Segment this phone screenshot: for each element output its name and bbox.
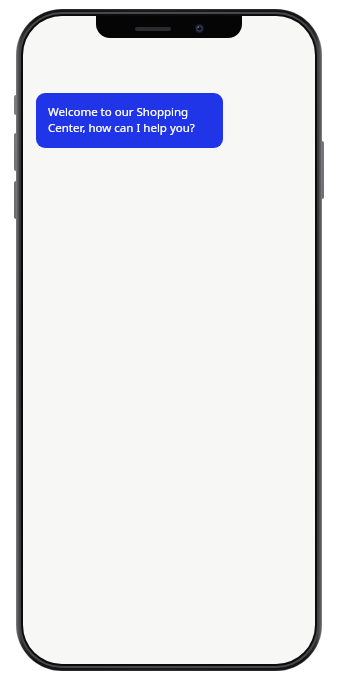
staticText: Welcome to our Shopping Center, how can … bbox=[48, 104, 211, 136]
button[interactable]: Welcome to our Shopping Center, how can … bbox=[36, 93, 223, 148]
